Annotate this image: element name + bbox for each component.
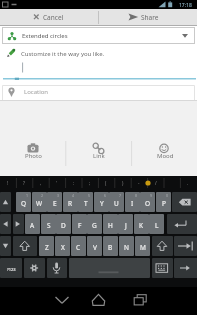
staticText: .	[187, 180, 189, 186]
staticText: B	[108, 243, 113, 252]
staticText: F	[78, 221, 82, 230]
staticText: R	[68, 199, 73, 208]
staticText: Cancel	[43, 13, 64, 22]
staticText: Photo	[25, 152, 42, 160]
staticText: 7	[119, 193, 122, 198]
staticText: G	[92, 221, 97, 230]
staticText: W	[36, 199, 43, 208]
staticText: 17:18	[179, 2, 192, 9]
staticText: Link	[93, 152, 105, 160]
staticText: Share	[141, 13, 159, 22]
staticText: 5	[88, 193, 91, 198]
staticText: ;	[89, 180, 91, 186]
staticText: T	[84, 199, 88, 208]
staticText: ?123	[7, 267, 16, 272]
staticText: ?	[23, 180, 25, 186]
staticText: M	[140, 243, 146, 252]
staticText: 0	[166, 193, 169, 198]
staticText: S	[47, 221, 51, 230]
staticText: )	[122, 180, 124, 186]
staticText: :	[73, 180, 75, 186]
staticText: -	[138, 180, 140, 186]
staticText: Location	[24, 88, 49, 96]
staticText: L	[155, 221, 159, 230]
staticText: Z	[45, 243, 49, 252]
staticText: I	[131, 199, 134, 208]
staticText: N	[124, 243, 129, 252]
staticText: P	[162, 199, 166, 208]
staticText: K	[139, 221, 144, 230]
staticText: Customize it the way you like.	[21, 50, 105, 58]
staticText: ,	[40, 180, 42, 186]
staticText: X	[61, 243, 65, 252]
staticText: C	[76, 243, 81, 252]
staticText: O	[145, 199, 151, 208]
staticText: Q	[21, 199, 27, 208]
staticText: 3	[57, 193, 60, 198]
staticText: Y	[100, 199, 104, 208]
staticText: 9	[150, 193, 153, 198]
staticText: Mood	[157, 152, 174, 160]
staticText: A	[30, 221, 35, 230]
staticText: D	[61, 221, 66, 230]
staticText: Extended circles	[22, 32, 68, 40]
staticText: V	[93, 243, 97, 252]
staticText: 6	[104, 193, 107, 198]
staticText: 1	[26, 193, 29, 198]
staticText: 2	[41, 193, 44, 198]
staticText: (	[105, 180, 107, 186]
staticText: 4	[72, 193, 75, 198]
staticText: /	[155, 180, 157, 186]
staticText: 8	[135, 193, 138, 198]
staticText: !	[7, 180, 9, 186]
staticText: '	[56, 180, 58, 186]
staticText: J	[125, 221, 127, 230]
staticText: U	[114, 199, 119, 208]
staticText: H	[108, 221, 113, 230]
staticText: E	[53, 199, 57, 208]
